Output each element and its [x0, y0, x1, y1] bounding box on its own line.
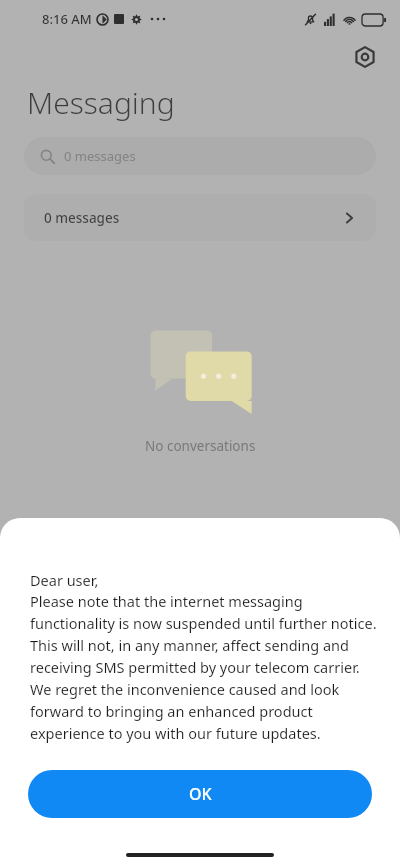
staticText: OK: [189, 783, 212, 805]
staticText: 0 messages: [64, 147, 136, 165]
button[interactable]: Settings: [348, 40, 382, 74]
staticText: Messaging: [27, 82, 175, 123]
button[interactable]: 0 messages: [24, 137, 376, 175]
staticText: 0 messages: [44, 209, 120, 227]
staticText: No conversations: [145, 437, 256, 455]
button[interactable]: 0 messages: [24, 194, 376, 241]
staticText: Dear user, Please note that the internet…: [30, 570, 384, 744]
staticText: 8:16 AM: [42, 10, 92, 28]
button[interactable]: OK: [28, 770, 372, 818]
